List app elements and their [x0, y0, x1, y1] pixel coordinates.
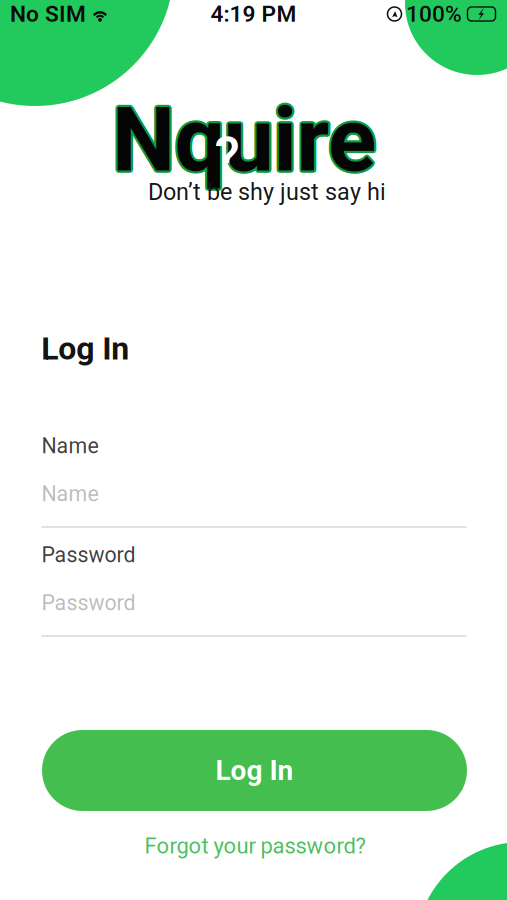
- staticText: Nquire: [112, 88, 376, 192]
- staticText: Nquire: [112, 85, 376, 190]
- staticText: Log In: [215, 754, 293, 787]
- staticText: Password: [41, 590, 135, 615]
- staticText: Log In: [41, 330, 129, 367]
- staticText: Forgot your password?: [144, 833, 365, 859]
- staticText: Name: [41, 481, 98, 506]
- staticText: Nquire: [114, 89, 378, 194]
- staticText: Nquire: [114, 86, 378, 191]
- staticText: Password: [41, 542, 135, 567]
- staticText: 4:19 PM: [210, 1, 296, 27]
- staticText: Nquire: [110, 86, 374, 191]
- staticText: Name: [41, 433, 98, 458]
- staticText: Nquire: [112, 90, 376, 195]
- staticText: Nquire: [110, 88, 374, 192]
- staticText: No SIM: [10, 1, 86, 27]
- staticText: ?: [214, 125, 239, 186]
- staticText: Nquire: [110, 89, 374, 194]
- button[interactable]: Forgot your password?: [144, 833, 365, 859]
- button[interactable]: Log In: [42, 730, 467, 811]
- staticText: 100%: [406, 1, 462, 27]
- staticText: Nquire: [114, 88, 378, 192]
- staticText: Don’t be shy just say hi: [148, 178, 386, 206]
